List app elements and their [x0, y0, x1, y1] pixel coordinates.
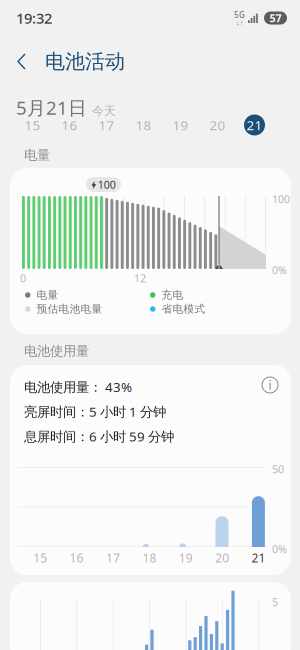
staticText: 亮屏时间：5 小时 1 分钟: [24, 403, 166, 420]
staticText: 21: [246, 116, 262, 134]
staticText: i: [268, 377, 271, 393]
staticText: 19: [172, 116, 188, 134]
staticText: 5G: [234, 10, 245, 20]
staticText: 电池使用量： 43%: [24, 378, 132, 396]
staticText: 19:32: [16, 8, 52, 28]
staticText: 电量: [24, 147, 50, 163]
button[interactable]: 19: [162, 114, 199, 136]
staticText: 18: [135, 116, 151, 134]
button[interactable]: 15: [14, 114, 51, 136]
staticText: 充电: [161, 288, 183, 301]
staticText: 17: [106, 550, 120, 566]
staticText: 100: [272, 192, 290, 206]
staticText: 50: [272, 462, 284, 476]
staticText: 0%: [272, 542, 287, 556]
staticText: 12: [134, 271, 146, 285]
staticText: 16: [70, 550, 84, 566]
button[interactable]: 16: [51, 114, 88, 136]
staticText: 20: [209, 116, 225, 134]
button[interactable]: 信息: [258, 373, 282, 397]
staticText: 21: [252, 550, 266, 566]
staticText: 电池活动: [45, 49, 125, 74]
staticText: 预估电池电量: [36, 302, 102, 315]
button[interactable]: 21: [236, 114, 273, 136]
staticText: 0%: [272, 263, 287, 277]
button[interactable]: 17: [88, 114, 125, 136]
staticText: 20: [215, 550, 229, 566]
staticText: 息屏时间：6 小时 59 分钟: [24, 427, 174, 445]
button[interactable]: 20: [199, 114, 236, 136]
staticText: 17: [98, 116, 114, 134]
staticText: 0: [20, 271, 26, 285]
staticText: 18: [142, 550, 156, 566]
button[interactable]: 返回: [11, 50, 39, 73]
button[interactable]: 18: [125, 114, 162, 136]
staticText: 省电模式: [161, 302, 205, 315]
staticText: 5: [272, 595, 278, 609]
staticText: ↓↑: [235, 20, 243, 26]
staticText: 今天: [92, 104, 116, 118]
staticText: 100: [98, 177, 116, 192]
staticText: 15: [24, 116, 40, 134]
staticText: 15: [33, 550, 47, 566]
staticText: 19: [179, 550, 193, 566]
staticText: 57: [269, 11, 281, 25]
staticText: 16: [61, 116, 77, 134]
staticText: 电量: [36, 288, 58, 301]
staticText: 电池使用量: [24, 343, 89, 359]
staticText: 5月21日: [16, 95, 87, 120]
